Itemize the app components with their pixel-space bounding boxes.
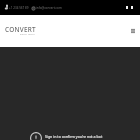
- other: Warning: [30, 132, 42, 140]
- button[interactable]: Instagram: [129, 5, 134, 10]
- button[interactable]: CONVERT: [5, 25, 36, 34]
- button[interactable]: +1 234 567 89: [5, 5, 29, 10]
- staticText: Sign in to confirm you’re not a bot: [45, 134, 103, 139]
- staticText: info@convert.com: [36, 6, 62, 10]
- staticText: DIGITAL AGENCY: [20, 33, 36, 35]
- button[interactable]: Open menu: [128, 26, 137, 35]
- staticText: CONVERT: [5, 25, 36, 34]
- staticText: +1 234 567 89: [9, 6, 29, 10]
- button[interactable]: info@convert.com: [32, 6, 62, 10]
- button[interactable]: Facebook: [124, 5, 129, 10]
